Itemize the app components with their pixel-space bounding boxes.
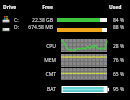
staticText: 22.38 GB [24, 17, 53, 24]
staticText: BAT [44, 86, 56, 93]
staticText: Used [109, 4, 122, 11]
button[interactable]: Drive C: [2, 16, 10, 23]
staticText: C: [14, 17, 19, 24]
staticText: 88 % [113, 24, 125, 31]
staticText: Free [35, 4, 53, 11]
staticText: 65 % [113, 71, 125, 78]
staticText: CPU [44, 43, 56, 50]
button[interactable]: Battery level 95 percent [57, 86, 105, 93]
staticText: 28 % [113, 43, 125, 50]
button[interactable]: Drive D: [2, 26, 10, 33]
button[interactable]: C: usage 84 % [57, 18, 107, 22]
staticText: MEM [44, 57, 56, 64]
button[interactable]: CMT graph 65 % [61, 68, 107, 80]
staticText: 95 % [113, 86, 125, 93]
button[interactable]: MEM graph 76 % [61, 54, 107, 67]
button[interactable]: CPU graph 28 % [61, 39, 107, 52]
staticText: Drive [3, 4, 17, 11]
staticText: 84 % [113, 17, 125, 24]
staticText: CMT [44, 71, 56, 78]
button[interactable]: D: usage 88 % [57, 28, 107, 32]
staticText: D: [14, 24, 19, 31]
staticText: 674.58 MB [24, 24, 53, 31]
staticText: 76 % [113, 57, 125, 64]
